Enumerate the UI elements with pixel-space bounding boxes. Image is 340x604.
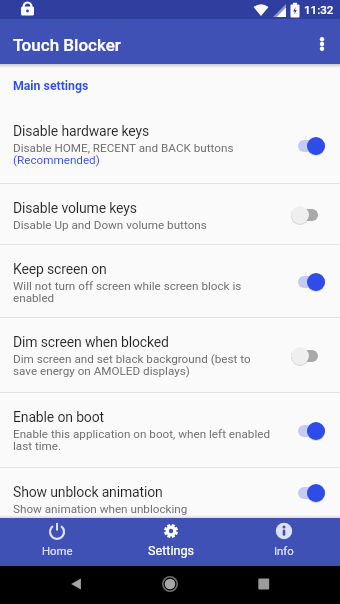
staticText: Disable Up and Down volume buttons (13, 218, 207, 232)
staticText: Main settings (13, 79, 89, 93)
staticText: enabled (13, 291, 55, 305)
staticText: Info (274, 545, 294, 558)
button[interactable]: Info (227, 518, 340, 566)
button[interactable]: Home (0, 518, 114, 566)
staticText: Disable hardware keys (13, 123, 150, 139)
button[interactable]: Settings (114, 518, 227, 566)
staticText: last time. (13, 439, 62, 453)
staticText: Will not turn off screen while screen bl… (13, 279, 242, 293)
button[interactable]: Dim screen when blocked (0, 318, 340, 393)
staticText: Keep screen on (13, 261, 107, 277)
button[interactable]: Show unblock animation (0, 468, 340, 518)
staticText: Settings (148, 543, 194, 558)
button[interactable]: Keep screen on (0, 245, 340, 318)
staticText: (Recommended) (13, 153, 100, 167)
staticText: Show animation when unblocking (13, 502, 188, 516)
staticText: Home (42, 545, 73, 558)
staticText: save energy on AMOLED displays) (13, 364, 190, 378)
staticText: Disable volume keys (13, 200, 137, 216)
staticText: Enable this application on boot, when le… (13, 427, 271, 441)
staticText: Dim screen and set black background (bes… (13, 352, 251, 366)
staticText: Enable on boot (13, 409, 104, 425)
button[interactable]: Disable volume keys (0, 184, 340, 245)
staticText: Dim screen when blocked (13, 334, 169, 350)
staticText: 11:32 (304, 3, 334, 17)
button[interactable]: Disable hardware keys (0, 107, 340, 184)
staticText: Disable HOME, RECENT and BACK buttons (13, 141, 234, 155)
staticText: Touch Blocker (13, 35, 121, 55)
button[interactable]: Enable on boot (0, 393, 340, 468)
button[interactable] (300, 22, 340, 62)
staticText: Show unblock animation (13, 484, 163, 500)
